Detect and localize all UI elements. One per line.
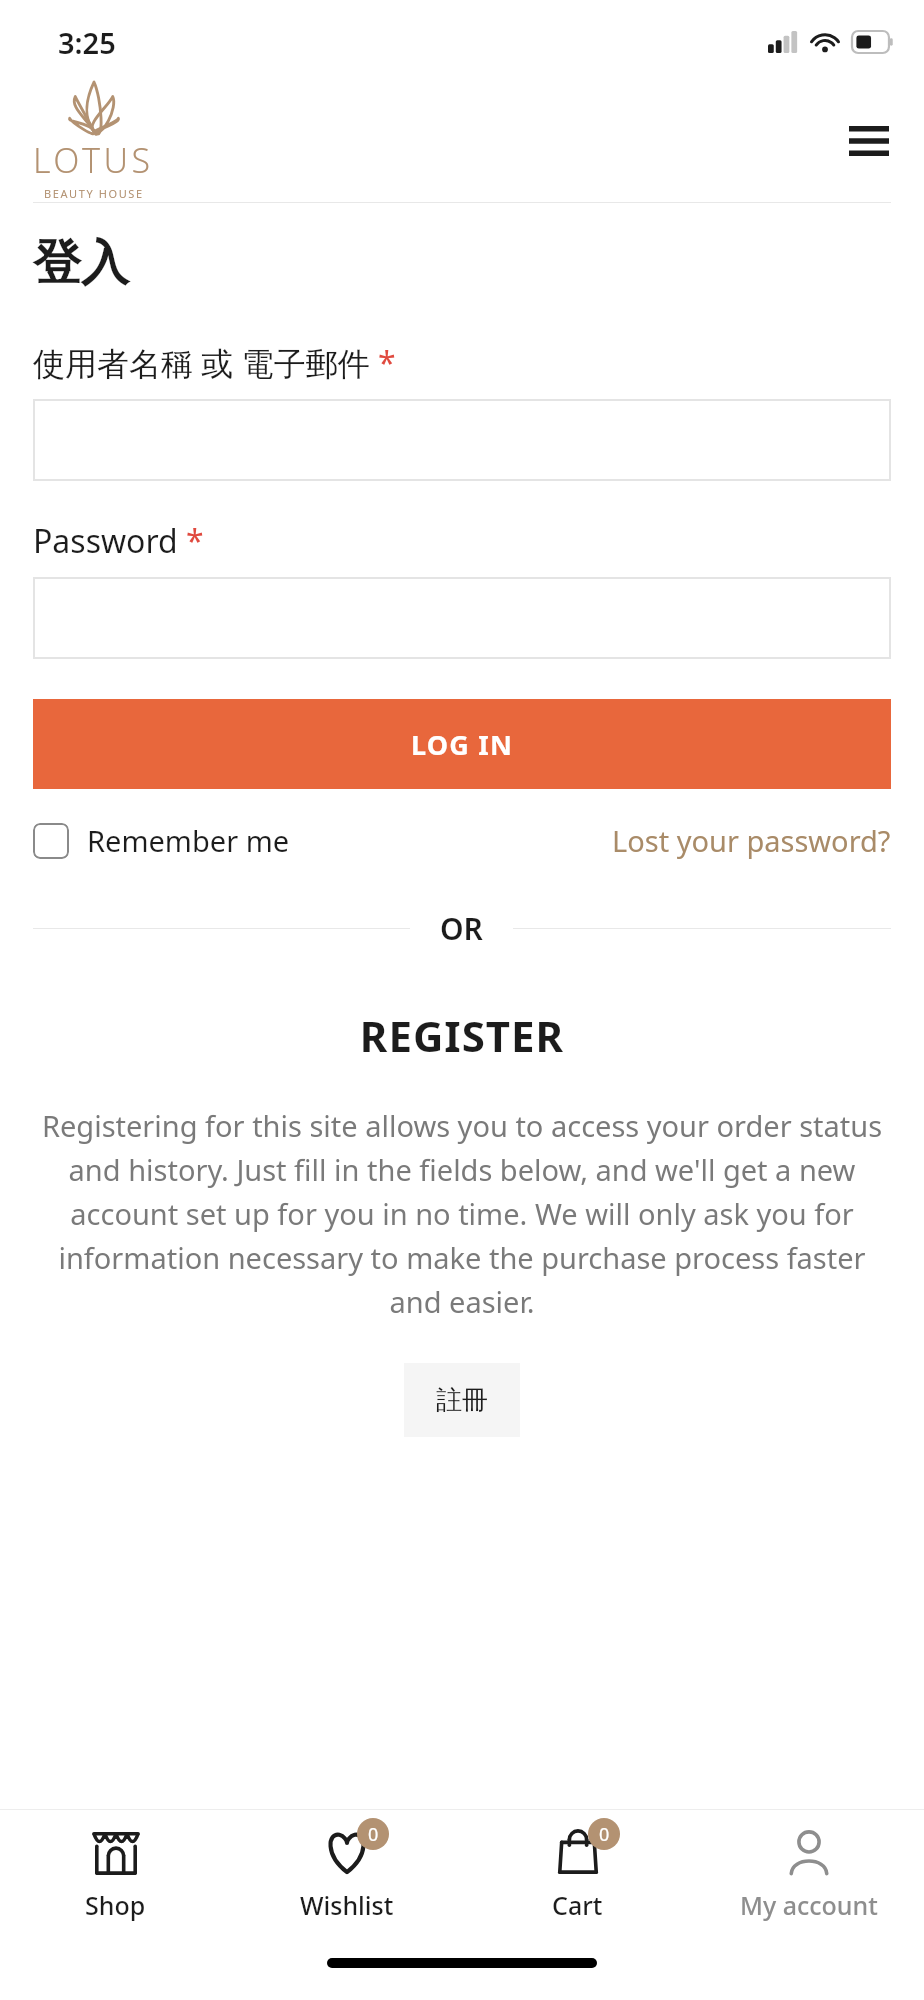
button[interactable]: Shop: [0, 1810, 231, 1940]
staticText: 登入: [33, 233, 129, 293]
staticText: REGISTER: [33, 1007, 891, 1064]
staticText: Cart: [552, 1888, 603, 1922]
staticText: Lost your password?: [612, 821, 891, 860]
staticText: LOTUS: [33, 137, 154, 183]
button[interactable]: [33, 399, 891, 481]
staticText: 使用者名稱 或 電子郵件 *: [33, 341, 396, 385]
staticText: Shop: [85, 1888, 146, 1922]
staticText: Registering for this site allows you to …: [33, 1106, 891, 1321]
staticText: BEAUTY HOUSE: [44, 186, 144, 201]
staticText: 0: [368, 1822, 379, 1847]
staticText: OR: [440, 908, 483, 949]
button[interactable]: Lotus Beauty House home: [33, 81, 154, 201]
staticText: 3:25: [58, 23, 116, 62]
button[interactable]: Menu: [840, 112, 898, 170]
button[interactable]: LOG IN: [33, 699, 891, 789]
button[interactable]: Wishlist: [231, 1810, 462, 1940]
button[interactable]: Cart: [462, 1810, 693, 1940]
button[interactable]: 註冊: [404, 1363, 520, 1437]
staticText: Remember me: [87, 821, 290, 860]
button[interactable]: Lost your password?: [612, 821, 891, 860]
staticText: 0: [599, 1822, 610, 1847]
staticText: 註冊: [436, 1384, 488, 1417]
staticText: Wishlist: [300, 1888, 394, 1922]
staticText: Password *: [33, 519, 204, 563]
button[interactable]: My account: [693, 1810, 924, 1940]
staticText: My account: [740, 1888, 878, 1922]
staticText: LOG IN: [411, 726, 514, 763]
button[interactable]: Remember me: [33, 821, 290, 860]
button[interactable]: [33, 577, 891, 659]
